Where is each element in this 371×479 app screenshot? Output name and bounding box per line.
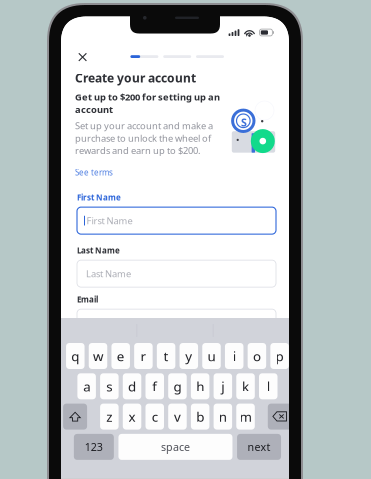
staticText: p (276, 347, 284, 365)
staticText: k (242, 377, 249, 395)
button[interactable]: i (225, 343, 243, 369)
button[interactable]: a (77, 373, 96, 399)
staticText: w (93, 347, 103, 365)
staticText: s (106, 377, 112, 395)
button[interactable]: n (214, 404, 232, 430)
button[interactable]: g (168, 373, 187, 399)
staticText: a (83, 377, 90, 395)
staticText: z (106, 408, 112, 425)
staticText: Email (77, 294, 98, 305)
staticText: See terms (75, 167, 113, 178)
button[interactable]: b (191, 404, 209, 430)
staticText: d (128, 377, 136, 395)
staticText: space (161, 440, 190, 454)
staticText: 123 (85, 440, 103, 454)
staticText: Last Name (77, 245, 120, 256)
staticText: Set up your account and make a purchase … (75, 119, 213, 157)
staticText: i (233, 347, 236, 365)
button[interactable]: Last Name (77, 260, 276, 287)
staticText: c (152, 408, 158, 425)
staticText: x (129, 408, 136, 425)
staticText: o (253, 347, 261, 365)
button[interactable]: d (123, 373, 141, 399)
button[interactable]: See terms (75, 165, 117, 179)
button[interactable]: k (236, 373, 255, 399)
button[interactable]: m (236, 404, 255, 430)
button[interactable]: Email (77, 309, 276, 336)
button[interactable]: Close (72, 46, 94, 68)
staticText: j (221, 377, 224, 395)
staticText: First Name (86, 214, 132, 227)
button[interactable]: c (145, 404, 164, 430)
staticText: h (196, 377, 204, 395)
staticText: l (267, 377, 270, 395)
staticText: e (117, 347, 125, 365)
button[interactable]: next (237, 434, 281, 460)
button[interactable]: s (100, 373, 119, 399)
staticText: Last Name (86, 267, 131, 280)
staticText: g (173, 377, 181, 395)
button[interactable]: p (270, 343, 289, 369)
button[interactable]: Delete (268, 404, 292, 430)
button[interactable]: o (248, 343, 266, 369)
staticText: m (239, 408, 251, 425)
button[interactable]: u (202, 343, 221, 369)
staticText: q (71, 347, 79, 365)
button[interactable]: l (259, 373, 277, 399)
button[interactable]: First Name (77, 207, 276, 234)
button[interactable]: y (179, 343, 198, 369)
button[interactable]: f (145, 373, 164, 399)
button[interactable]: j (214, 373, 232, 399)
button[interactable]: 123 (74, 434, 114, 460)
staticText: Get up to $200 for setting up an account (75, 91, 220, 115)
button[interactable]: r (134, 343, 153, 369)
staticText: r (140, 347, 146, 365)
button[interactable]: w (89, 343, 107, 369)
staticText: Create your account (75, 70, 196, 86)
staticText: f (152, 377, 157, 395)
staticText: First Name (77, 192, 121, 203)
staticText: Email (86, 316, 109, 329)
button[interactable]: z (100, 404, 119, 430)
button[interactable]: x (123, 404, 141, 430)
staticText: t (164, 347, 169, 365)
button[interactable]: Shift (63, 404, 87, 430)
staticText: u (207, 347, 215, 365)
staticText: next (247, 440, 270, 454)
staticText: n (219, 408, 227, 425)
button[interactable]: space (118, 434, 232, 460)
button[interactable]: v (168, 404, 187, 430)
button[interactable]: h (191, 373, 209, 399)
staticText: v (174, 408, 181, 425)
staticText: b (196, 408, 204, 425)
staticText: S (241, 115, 247, 129)
button[interactable]: e (111, 343, 130, 369)
button[interactable]: t (157, 343, 175, 369)
staticText: y (185, 347, 192, 365)
button[interactable]: q (66, 343, 84, 369)
